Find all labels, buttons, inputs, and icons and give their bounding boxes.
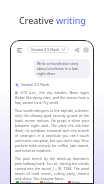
button[interactable]: New chat <box>81 45 90 54</box>
staticText: At 2:07 a.m., the city exhales. Neon sig… <box>15 90 89 105</box>
staticText: Your booth whispers to the asphalt, a sh… <box>15 108 89 153</box>
staticText: Image Generation <box>44 181 62 184</box>
staticText: The pool bench by the dried-up fountain'… <box>15 156 89 181</box>
staticText: Video Generati <box>72 181 88 184</box>
button[interactable]: Image Generation <box>38 181 64 184</box>
button[interactable]: Share <box>72 45 81 54</box>
staticText: Creative writing <box>19 14 86 26</box>
button[interactable]: Menu <box>14 45 24 55</box>
button[interactable]: Video Generati <box>66 181 90 184</box>
button[interactable]: Write a microfiction story about lonelin… <box>34 59 90 78</box>
button[interactable]: Gemini 2.5 Flash <box>27 46 69 53</box>
staticText: Gemini 2.5 Flash <box>21 82 50 87</box>
staticText: Write a microfiction story about lonelin… <box>37 61 87 76</box>
staticText: Gemini 2.5 Flash <box>31 47 60 52</box>
staticText: Ad Edits <box>20 181 32 184</box>
button[interactable]: Ad Edits <box>14 181 36 184</box>
